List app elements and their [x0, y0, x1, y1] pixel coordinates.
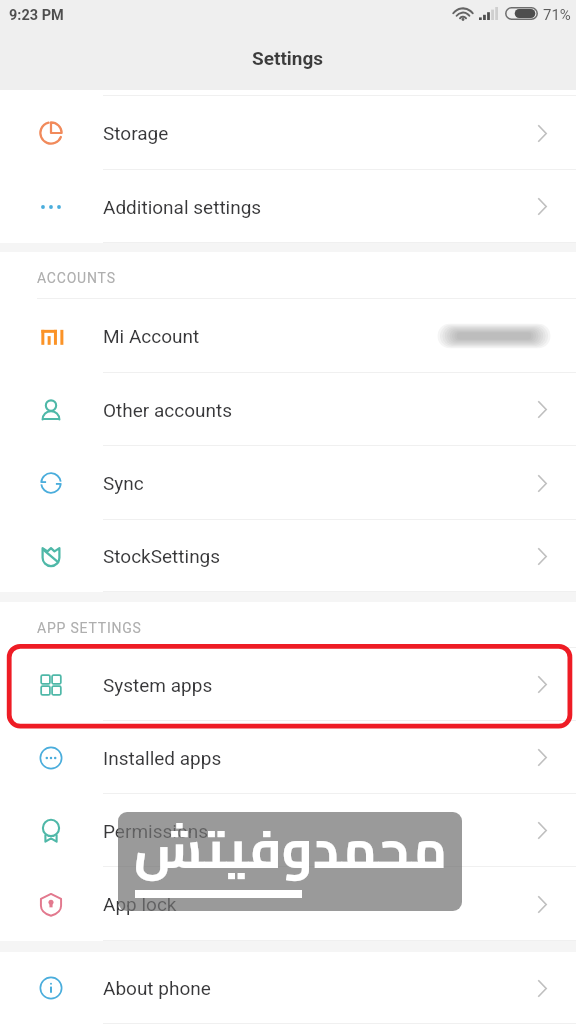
- staticText: App lock: [103, 893, 177, 915]
- staticText: APP SETTINGS: [37, 620, 142, 636]
- button[interactable]: StockSettings: [0, 520, 576, 592]
- staticText: ACCOUNTS: [37, 270, 116, 286]
- button[interactable]: Mi Account: [0, 299, 576, 373]
- button[interactable]: About phone: [0, 952, 576, 1024]
- button[interactable]: Other accounts: [0, 373, 576, 446]
- button[interactable]: Additional settings: [0, 170, 576, 243]
- staticText: About phone: [103, 977, 211, 999]
- staticText: 71%: [543, 6, 571, 24]
- staticText: Settings: [252, 47, 324, 69]
- staticText: Storage: [103, 122, 169, 144]
- staticText: System apps: [103, 674, 213, 696]
- staticText: Additional settings: [103, 196, 262, 218]
- button[interactable]: Sync: [0, 446, 576, 520]
- staticText: Mi Account: [103, 325, 200, 347]
- button[interactable]: Installed apps: [0, 721, 576, 794]
- staticText: 9:23 PM: [9, 7, 64, 24]
- button[interactable]: Storage: [0, 96, 576, 170]
- button[interactable]: System apps: [0, 648, 576, 721]
- staticText: Installed apps: [103, 747, 222, 769]
- staticText: محمدوفيتش: [134, 812, 447, 898]
- staticText: Permissions: [103, 820, 209, 842]
- button[interactable]: App lock: [0, 867, 576, 941]
- button[interactable]: Permissions: [0, 794, 576, 867]
- staticText: Other accounts: [103, 399, 233, 421]
- staticText: Sync: [103, 472, 144, 494]
- staticText: StockSettings: [103, 545, 221, 567]
